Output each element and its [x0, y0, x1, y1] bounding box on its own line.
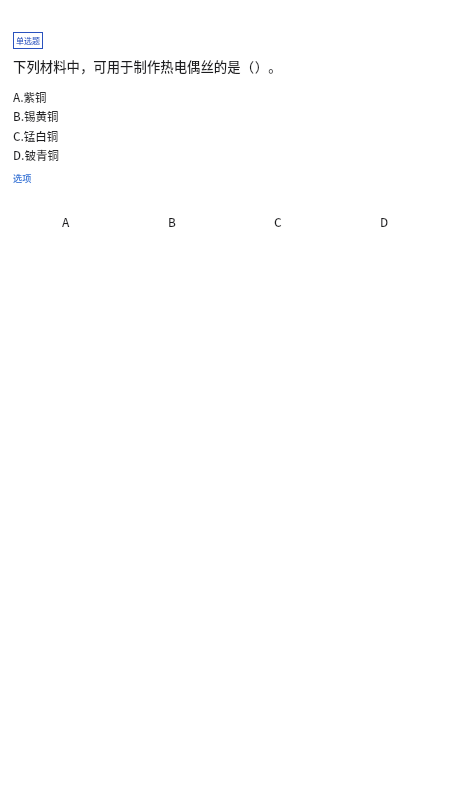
staticText: A.紫铜 — [13, 89, 47, 106]
staticText: 单选题 — [16, 35, 40, 47]
button[interactable]: B — [119, 211, 225, 231]
staticText: 下列材料中，可用于制作热电偶丝的是（ ）。 — [13, 56, 282, 75]
staticText: D.铍青铜 — [13, 147, 59, 164]
button[interactable]: D.铍青铜 — [13, 147, 59, 164]
button[interactable]: 选项 — [13, 171, 32, 184]
staticText: C — [274, 213, 282, 230]
button[interactable]: A.紫铜 — [13, 89, 47, 106]
button[interactable]: C.锰白铜 — [13, 128, 59, 145]
staticText: C.锰白铜 — [13, 128, 59, 145]
button[interactable]: A — [13, 211, 119, 231]
staticText: B — [168, 213, 176, 230]
staticText: B.锡黄铜 — [13, 108, 59, 125]
staticText: D — [380, 213, 389, 230]
staticText: 选项 — [13, 171, 32, 184]
staticText: A — [62, 213, 70, 230]
button[interactable]: 单选题 — [13, 32, 43, 49]
button[interactable]: B.锡黄铜 — [13, 108, 59, 125]
button[interactable]: C — [225, 211, 331, 231]
button[interactable]: D — [331, 211, 437, 231]
